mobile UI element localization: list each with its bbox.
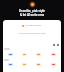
other: App logo bbox=[29, 1, 36, 8]
staticText: Tell the assistant what to write bbox=[3, 32, 61, 35]
button[interactable] bbox=[17, 63, 31, 66]
button[interactable]: AI Writer assistant bbox=[3, 24, 61, 27]
staticText: & let AI write now bbox=[0, 13, 64, 17]
button[interactable] bbox=[46, 63, 61, 66]
staticText: Describe, pick style bbox=[0, 9, 64, 13]
button[interactable] bbox=[46, 53, 61, 56]
button[interactable] bbox=[31, 53, 46, 56]
button[interactable] bbox=[3, 63, 17, 66]
button[interactable] bbox=[31, 63, 46, 66]
button[interactable] bbox=[17, 53, 31, 56]
staticText: AI Writer assistant bbox=[25, 24, 42, 27]
button[interactable] bbox=[3, 53, 17, 56]
